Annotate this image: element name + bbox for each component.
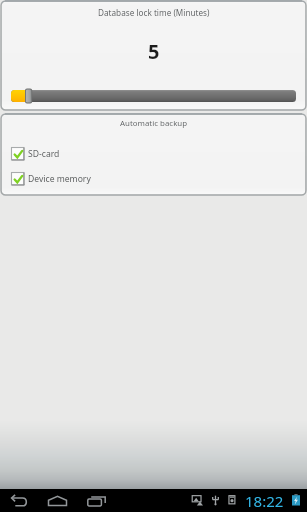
staticText: Database lock time (Minutes) xyxy=(98,7,210,18)
button[interactable]: Back xyxy=(6,489,32,512)
button[interactable]: SD-card xyxy=(0,147,307,161)
staticText: Automatic backup xyxy=(120,118,188,129)
button[interactable]: Recent apps xyxy=(84,489,110,512)
button[interactable]: Device memory xyxy=(0,172,307,186)
staticText: 18:22 xyxy=(245,491,284,511)
button[interactable] xyxy=(0,87,307,105)
staticText: SD-card xyxy=(28,148,60,160)
staticText: 5 xyxy=(148,38,160,65)
button[interactable]: Home xyxy=(44,489,70,512)
staticText: Device memory xyxy=(28,173,91,185)
